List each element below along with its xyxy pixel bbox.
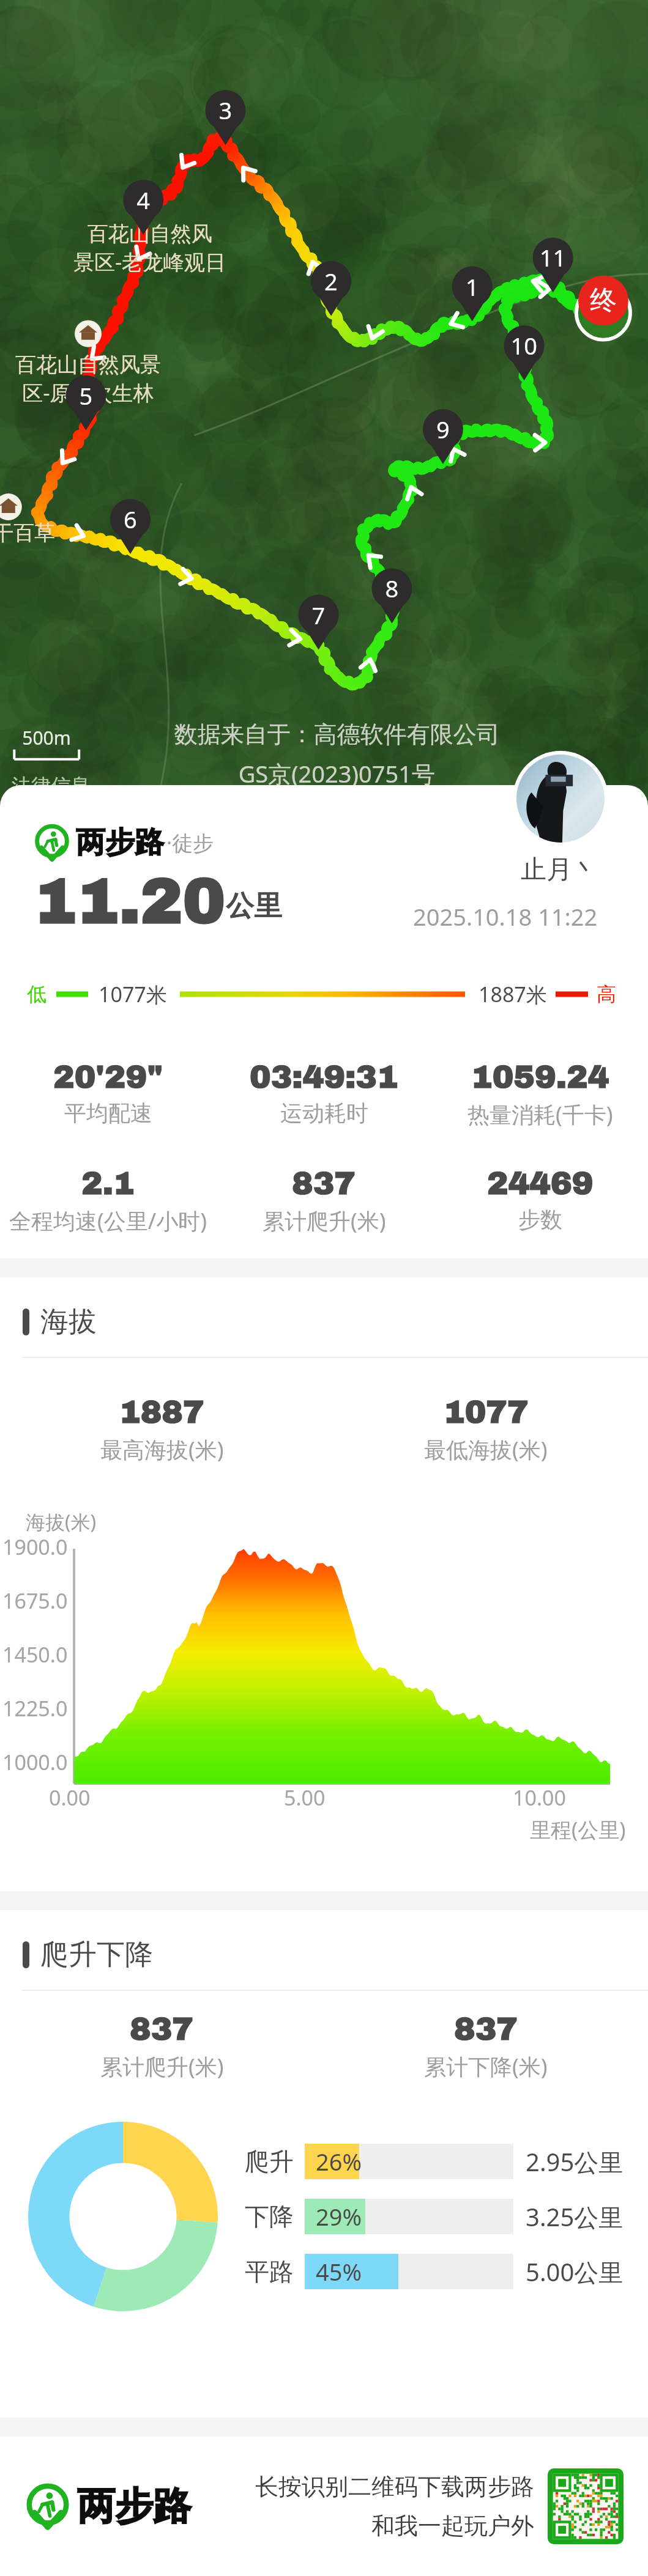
staticText: 2.95公里 <box>526 2145 624 2179</box>
staticText: 两步路 <box>76 824 164 861</box>
staticText: 3.25公里 <box>526 2200 624 2234</box>
staticText: 里程(公里) <box>530 1815 626 1843</box>
staticText: 1675.0 <box>2 1587 68 1615</box>
staticText: 2025.10.18 11:22 <box>413 901 598 932</box>
staticText: 平均配速 <box>64 1099 152 1127</box>
staticText: 1225.0 <box>2 1694 68 1722</box>
staticText: 最低海拔(米) <box>424 1434 548 1464</box>
staticText: 1077米 <box>99 980 167 1008</box>
staticText: 两步路 <box>77 2482 191 2530</box>
staticText: 1000.0 <box>2 1748 68 1776</box>
staticText: 运动耗时 <box>280 1099 368 1127</box>
staticText: 1059.24 <box>471 1060 609 1094</box>
staticText: 海拔 <box>40 1304 97 1340</box>
staticText: 29% <box>316 2201 362 2232</box>
staticText: 24469 <box>487 1166 594 1201</box>
staticText: 步数 <box>518 1206 562 1233</box>
staticText: 累计爬升(米) <box>100 2051 224 2081</box>
staticText: 03:49:31 <box>250 1060 398 1094</box>
staticText: 长按识别二维码下载两步路 <box>255 2472 534 2501</box>
staticText: 爬升 <box>245 2146 294 2177</box>
staticText: 1450.0 <box>2 1640 68 1669</box>
staticText: 最高海拔(米) <box>100 1434 224 1464</box>
staticText: 累计爬升(米) <box>263 1206 386 1236</box>
staticText: 0.00 <box>49 1784 91 1812</box>
staticText: 海拔(米) <box>26 1508 97 1535</box>
staticText: 5.00 <box>284 1784 326 1812</box>
staticText: 和我一起玩户外 <box>371 2511 534 2541</box>
staticText: 5.00公里 <box>526 2255 624 2289</box>
staticText: 下降 <box>245 2201 294 2232</box>
staticText: 热量消耗(千卡) <box>467 1099 613 1129</box>
staticText: ·徒步 <box>166 829 214 857</box>
staticText: 20'29" <box>53 1060 163 1094</box>
staticText: 高 <box>597 982 616 1006</box>
staticText: 26% <box>316 2146 362 2177</box>
staticText: 837 <box>292 1166 356 1201</box>
staticText: 837 <box>130 2012 194 2046</box>
staticText: 45% <box>316 2256 362 2287</box>
staticText: 爬升下降 <box>40 1937 153 1973</box>
staticText: 平路 <box>245 2256 294 2287</box>
staticText: 低 <box>27 982 47 1006</box>
staticText: 全程均速(公里/小时) <box>9 1206 207 1236</box>
staticText: 11.20 <box>34 867 226 936</box>
staticText: 1887 <box>119 1395 204 1430</box>
staticText: 1900.0 <box>2 1533 68 1561</box>
staticText: 837 <box>454 2012 518 2046</box>
button[interactable]: User avatar <box>516 755 605 843</box>
staticText: 累计下降(米) <box>424 2051 548 2081</box>
staticText: 止月丶 <box>521 854 598 886</box>
staticText: 公里 <box>226 888 282 924</box>
staticText: 1887米 <box>479 980 547 1008</box>
staticText: 10.00 <box>513 1784 566 1812</box>
staticText: 1077 <box>444 1395 529 1430</box>
staticText: 2.1 <box>81 1166 135 1201</box>
